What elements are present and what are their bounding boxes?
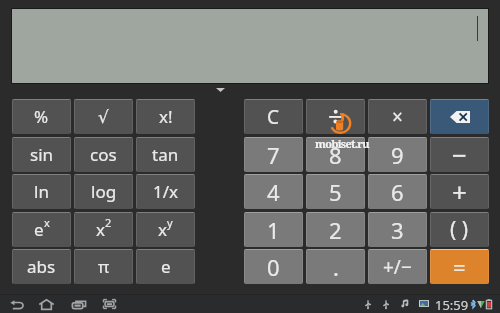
button[interactable]: % [12,99,71,134]
button[interactable]: − [430,137,489,172]
button[interactable]: x [136,212,195,247]
staticText: abs [27,255,56,278]
button[interactable]: log [74,174,133,209]
button[interactable]: ln [12,174,71,209]
button[interactable]: 1/x [136,174,195,209]
staticText: . [333,252,339,282]
button[interactable]: 8 [306,137,365,172]
staticText: y [167,215,173,230]
button[interactable]: cos [74,137,133,172]
button[interactable]: 0 [244,249,303,284]
other: Expand history [216,88,225,92]
staticText: sin [30,143,54,166]
staticText: ln [34,180,49,203]
button[interactable]: √ [74,99,133,134]
button[interactable]: × [368,99,427,134]
staticText: 7 [267,140,280,170]
button[interactable]: π [74,249,133,284]
button[interactable]: Recent apps [67,294,91,313]
staticText: x [96,218,105,241]
button[interactable]: 4 [244,174,303,209]
staticText: x [44,215,50,230]
staticText: 6 [391,177,404,207]
button[interactable]: ( ) [430,212,489,247]
button[interactable]: 7 [244,137,303,172]
button[interactable]: 6 [368,174,427,209]
staticText: tan [152,143,179,166]
button[interactable] [306,99,365,134]
staticText: √ [98,107,109,127]
staticText: cos [90,143,117,166]
staticText: e [161,255,171,278]
staticText: mobiset.ru [315,136,369,151]
button[interactable]: = [430,249,489,284]
staticText: 1/x [153,180,179,203]
button[interactable]: +/− [368,249,427,284]
button[interactable]: x [74,212,133,247]
staticText: 2 [105,215,112,230]
button[interactable]: 5 [306,174,365,209]
staticText: × [392,104,403,130]
staticText: ( ) [450,215,469,244]
button[interactable]: e [12,212,71,247]
staticText: C [267,104,280,130]
staticText: 4 [267,177,280,207]
staticText: − [452,137,467,172]
staticText: 9 [391,140,404,170]
staticText: x! [159,105,173,128]
other: Delete [450,111,470,123]
button[interactable]: Screenshot [98,294,121,313]
staticText: 3 [391,215,404,245]
staticText: = [453,252,466,282]
button[interactable]: 1 [244,212,303,247]
button[interactable]: . [306,249,365,284]
staticText: +/− [383,254,412,280]
staticText: 2 [329,215,342,245]
staticText: log [91,180,117,203]
staticText: + [452,174,467,209]
button[interactable]: x! [136,99,195,134]
staticText: 15:59 [435,296,469,313]
button[interactable]: Home [34,294,59,313]
button[interactable]: + [430,174,489,209]
staticText: 1 [267,215,280,245]
staticText: e [34,218,44,241]
button[interactable]: tan [136,137,195,172]
staticText: % [34,105,49,128]
button[interactable]: 9 [368,137,427,172]
button[interactable]: C [244,99,303,134]
staticText: 8 [329,140,342,170]
button[interactable]: Back [5,294,29,313]
button[interactable]: 3 [368,212,427,247]
button[interactable]: 2 [306,212,365,247]
button[interactable]: Delete [430,99,489,134]
button[interactable]: abs [12,249,71,284]
staticText: 0 [267,252,280,282]
staticText: x [158,218,167,241]
staticText: 5 [329,177,342,207]
button[interactable]: e [136,249,195,284]
button[interactable]: sin [12,137,71,172]
staticText: π [98,255,110,278]
